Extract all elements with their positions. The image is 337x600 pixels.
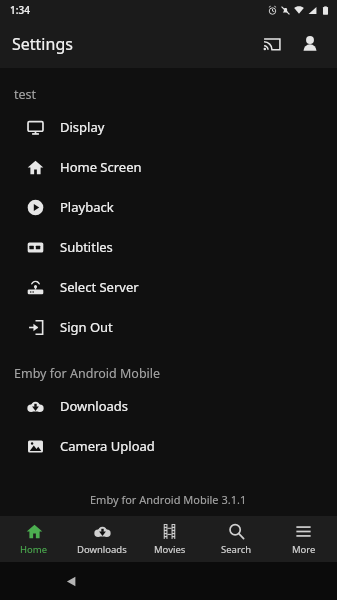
button[interactable]: Home bbox=[0, 516, 68, 562]
staticText: Home bbox=[20, 543, 48, 556]
button[interactable]: Home Screen bbox=[0, 147, 337, 187]
staticText: Sign Out bbox=[60, 318, 113, 336]
staticText: Camera Upload bbox=[60, 437, 155, 455]
button[interactable]: Camera Upload bbox=[0, 426, 337, 466]
button[interactable]: Subtitles bbox=[0, 227, 337, 267]
staticText: test bbox=[14, 86, 37, 103]
staticText: More bbox=[292, 543, 316, 556]
button[interactable]: Sign Out bbox=[0, 307, 337, 347]
button[interactable]: Downloads bbox=[0, 386, 337, 426]
staticText: Select Server bbox=[60, 278, 139, 296]
button[interactable]: Account bbox=[291, 25, 329, 63]
button[interactable]: Cast bbox=[253, 25, 291, 63]
staticText: 1:34 bbox=[10, 3, 30, 17]
staticText: Emby for Android Mobile 3.1.1 bbox=[90, 492, 247, 507]
button[interactable]: Back bbox=[0, 562, 142, 600]
staticText: Emby for Android Mobile bbox=[14, 365, 161, 382]
button[interactable]: Display bbox=[0, 107, 337, 147]
staticText: Downloads bbox=[77, 543, 127, 556]
staticText: Search bbox=[221, 543, 252, 556]
staticText: Home Screen bbox=[60, 158, 142, 176]
button[interactable]: Playback bbox=[0, 187, 337, 227]
staticText: Settings bbox=[12, 33, 73, 55]
staticText: Playback bbox=[60, 198, 114, 216]
staticText: Subtitles bbox=[60, 238, 113, 256]
button[interactable]: More bbox=[270, 516, 337, 562]
staticText: Movies bbox=[154, 543, 186, 556]
staticText: Display bbox=[60, 118, 105, 136]
button[interactable]: Select Server bbox=[0, 267, 337, 307]
button[interactable]: Search bbox=[203, 516, 270, 562]
staticText: Downloads bbox=[60, 397, 129, 415]
button[interactable]: Movies bbox=[136, 516, 203, 562]
button[interactable]: Downloads bbox=[68, 516, 136, 562]
